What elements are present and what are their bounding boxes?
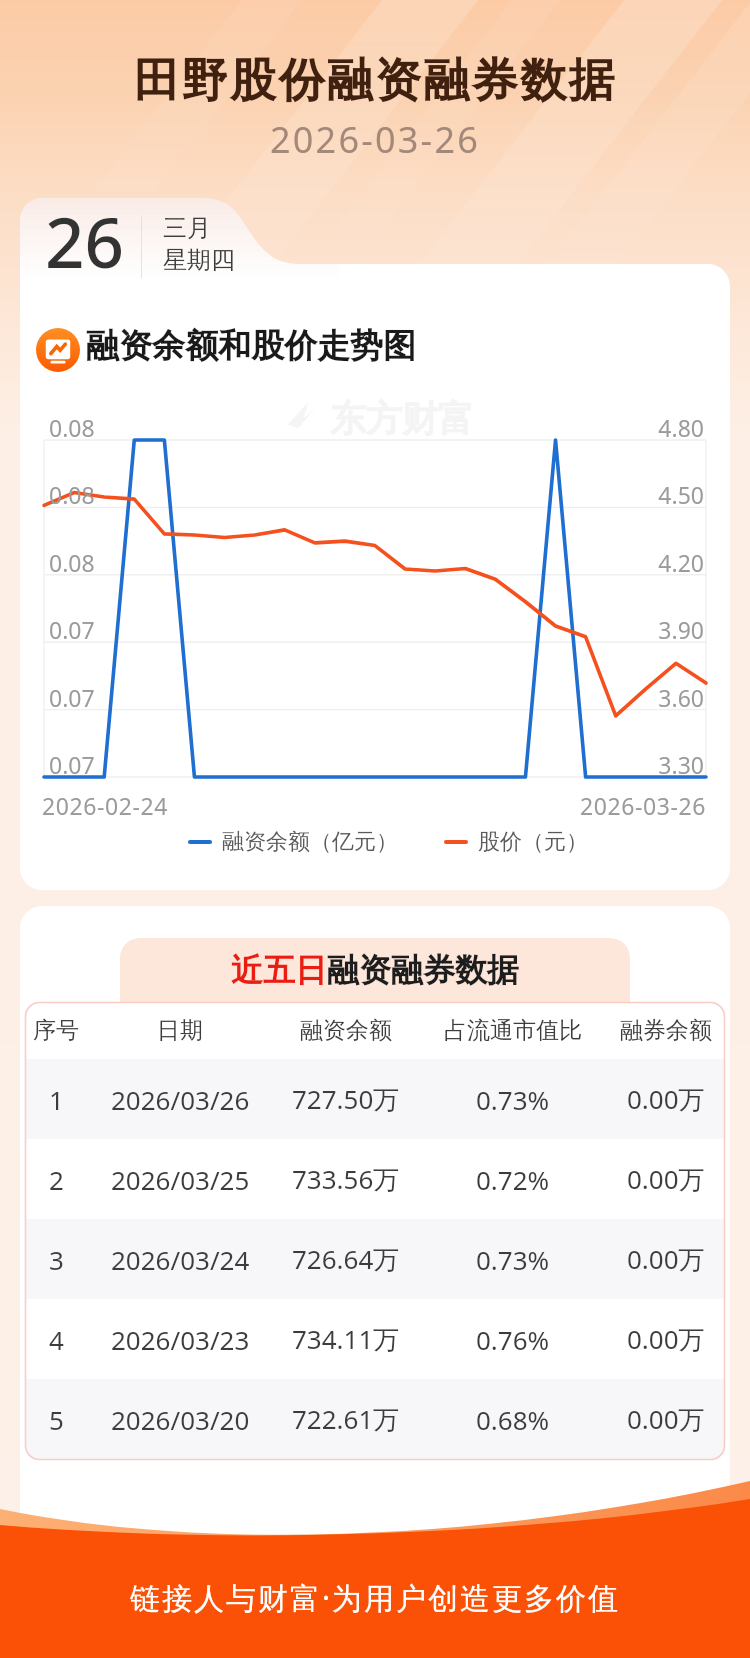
staticText: 1 xyxy=(49,1082,64,1117)
staticText: 3.30 xyxy=(600,749,704,780)
staticText: 727.50万 xyxy=(292,1081,400,1117)
staticText: 2026/03/26 xyxy=(111,1082,250,1117)
staticText: 2026-02-24 xyxy=(42,790,169,821)
staticText: 0.08 xyxy=(49,479,95,510)
staticText: 0.73% xyxy=(476,1082,550,1117)
staticText: 0.73% xyxy=(476,1242,550,1277)
staticText: 3.60 xyxy=(600,682,704,713)
staticText: 2026/03/25 xyxy=(111,1162,250,1197)
staticText: 0.00万 xyxy=(627,1321,705,1357)
staticText: 0.00万 xyxy=(627,1241,705,1277)
staticText: 0.68% xyxy=(476,1402,550,1437)
staticText: 0.07 xyxy=(49,614,95,645)
staticText: 东方财富 xyxy=(330,396,474,441)
button[interactable]: 2 xyxy=(25,1139,725,1219)
staticText: 2026-03-26 xyxy=(0,115,750,164)
staticText: 4 xyxy=(49,1322,64,1357)
staticText: 田野股份融资融券数据 xyxy=(0,52,750,110)
staticText: 近五日 xyxy=(231,950,327,990)
staticText: 序号 xyxy=(33,1016,79,1045)
staticText: 722.61万 xyxy=(292,1401,400,1437)
staticText: 三月 xyxy=(163,213,211,243)
staticText: 3.90 xyxy=(600,614,704,645)
button[interactable]: 5 xyxy=(25,1379,725,1459)
button[interactable]: 3 xyxy=(25,1219,725,1299)
staticText: 日期 xyxy=(157,1016,203,1045)
staticText: 726.64万 xyxy=(292,1241,400,1277)
staticText: 融券余额 xyxy=(620,1016,712,1045)
staticText: 26 xyxy=(45,194,124,288)
staticText: 4.80 xyxy=(600,412,704,443)
staticText: 0.07 xyxy=(49,682,95,713)
staticText: 0.72% xyxy=(476,1162,550,1197)
staticText: 2026/03/23 xyxy=(111,1322,250,1357)
staticText: 0.08 xyxy=(49,412,95,443)
staticText: 2026/03/20 xyxy=(111,1402,250,1437)
staticText: 0.00万 xyxy=(627,1401,705,1437)
staticText: 星期四 xyxy=(163,245,235,275)
staticText: 4.20 xyxy=(600,547,704,578)
staticText: 股价（元） xyxy=(478,828,588,856)
staticText: 0.76% xyxy=(476,1322,550,1357)
button[interactable]: 1 xyxy=(25,1059,725,1139)
staticText: 2026/03/24 xyxy=(111,1242,250,1277)
button[interactable]: 4 xyxy=(25,1299,725,1379)
staticText: 3 xyxy=(49,1242,64,1277)
staticText: 链接人与财富·为用户创造更多价值 xyxy=(0,1577,750,1618)
staticText: 734.11万 xyxy=(292,1321,400,1357)
staticText: 融资余额和股价走势图 xyxy=(86,325,416,367)
staticText: 733.56万 xyxy=(292,1161,400,1197)
staticText: 4.50 xyxy=(600,479,704,510)
staticText: 融资余额（亿元） xyxy=(222,828,398,856)
staticText: 2 xyxy=(49,1162,64,1197)
staticText: 融资融券数据 xyxy=(327,950,519,990)
staticText: 占流通市值比 xyxy=(444,1016,582,1045)
staticText: 0.00万 xyxy=(627,1081,705,1117)
staticText: 融资余额 xyxy=(300,1016,392,1045)
staticText: 0.08 xyxy=(49,547,95,578)
staticText: 0.07 xyxy=(49,749,95,780)
staticText: 2026-03-26 xyxy=(566,790,706,821)
staticText: 0.00万 xyxy=(627,1161,705,1197)
staticText: 5 xyxy=(49,1402,64,1437)
